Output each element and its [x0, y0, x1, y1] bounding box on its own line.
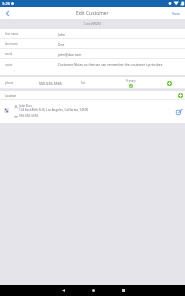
button[interactable]: Home: [78, 285, 108, 296]
button[interactable]: Add location: [176, 91, 185, 100]
staticText: Cust #90293: [84, 22, 101, 26]
staticText: 124 East 86th St N, Los Angeles, Califor…: [19, 108, 89, 112]
staticText: Location: [5, 94, 17, 98]
staticText: Customer Notes so that we can remember t…: [58, 62, 164, 66]
button[interactable]: last name: [0, 39, 185, 49]
button[interactable]: Add phone number: [164, 78, 175, 89]
staticText: first name: [5, 32, 19, 36]
staticText: Edit Customer: [76, 10, 109, 17]
staticText: last name: [5, 42, 18, 46]
staticText: john@doe.com: [58, 52, 82, 56]
staticText: Doe: [58, 42, 65, 46]
staticText: phone: [5, 81, 14, 85]
button[interactable]: first name: [0, 29, 185, 39]
button[interactable]: Back: [48, 285, 78, 296]
staticText: John: [58, 32, 65, 36]
staticText: 555-555-5555: [19, 114, 39, 118]
button[interactable]: Primary: [123, 79, 138, 88]
button[interactable]: John Doe,: [0, 100, 185, 123]
staticText: John Doe,: [19, 104, 33, 108]
staticText: Primary: [126, 79, 136, 83]
button[interactable]: email: [0, 49, 185, 59]
staticText: Ext.: [81, 81, 86, 85]
button[interactable]: notes: [0, 59, 185, 75]
staticText: email: [5, 52, 13, 56]
button[interactable]: Back: [0, 7, 15, 19]
staticText: Save: [172, 11, 180, 16]
staticText: 555-555-5555: [39, 81, 62, 86]
staticText: notes: [5, 63, 13, 67]
button[interactable]: Save: [166, 7, 185, 19]
button[interactable]: Recent apps: [108, 285, 138, 296]
button[interactable]: Edit location: [174, 107, 183, 116]
staticText: 3:26: [2, 1, 10, 6]
